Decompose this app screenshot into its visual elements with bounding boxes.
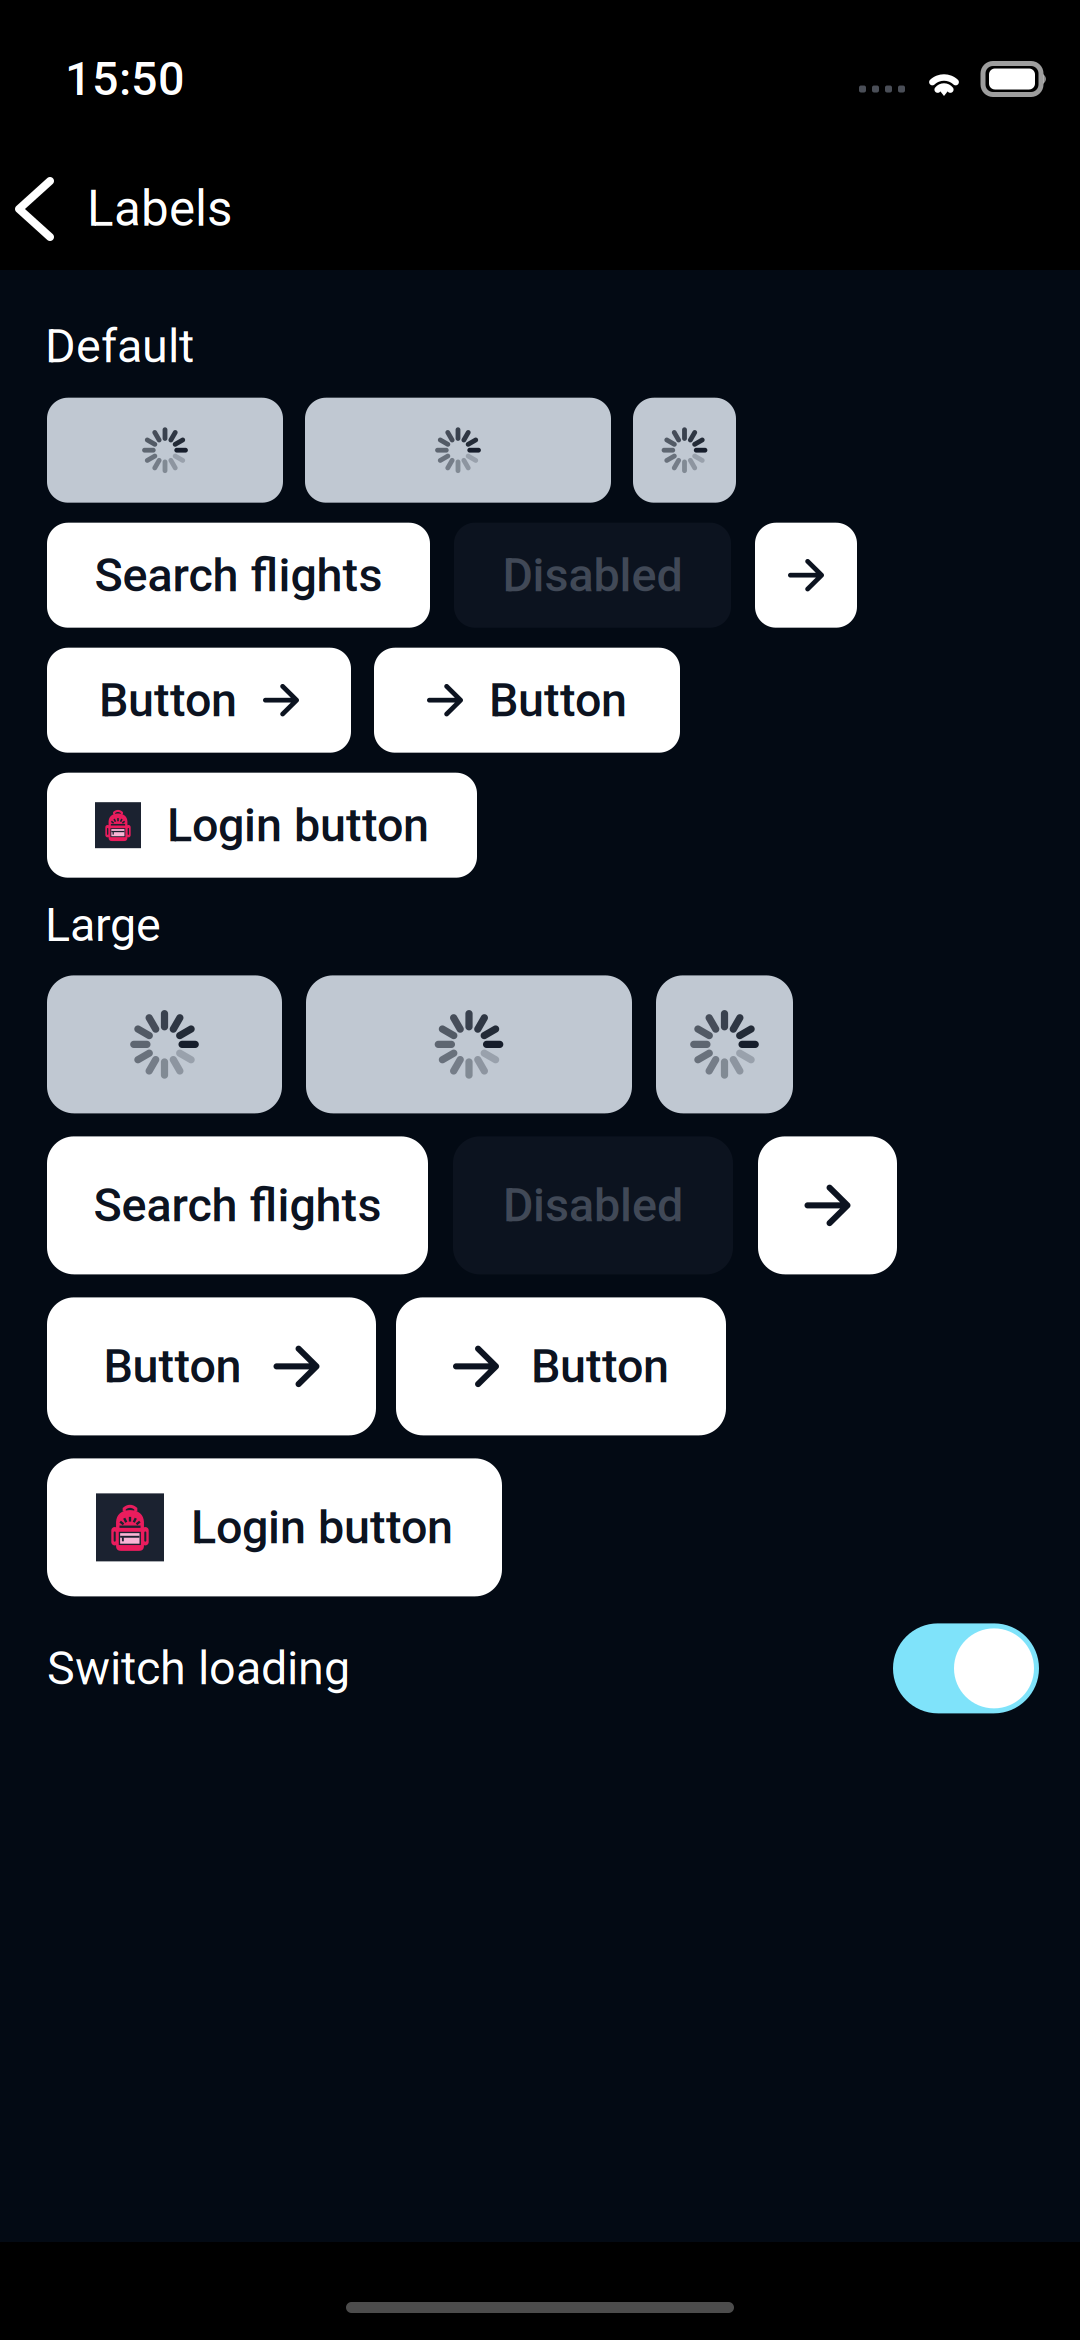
staticText: 15:50 (65, 52, 185, 106)
button[interactable] (47, 1458, 502, 1596)
staticText: Switch loading (47, 1641, 350, 1696)
button[interactable] (47, 773, 477, 878)
button[interactable] (454, 523, 731, 628)
staticText: Search flights (93, 1178, 381, 1233)
staticText: Button (531, 1339, 669, 1394)
staticText: Default (45, 319, 194, 374)
button[interactable]: Loading (633, 398, 736, 503)
staticText: Labels (87, 180, 232, 238)
button[interactable]: Loading (47, 398, 283, 503)
button[interactable] (47, 1297, 376, 1435)
staticText: Disabled (503, 1178, 683, 1233)
button[interactable] (396, 1297, 726, 1435)
button[interactable] (374, 648, 680, 753)
staticText: Disabled (502, 548, 682, 602)
staticText: Button (103, 1339, 241, 1394)
staticText: Large (45, 898, 161, 952)
button[interactable] (47, 648, 351, 753)
button[interactable]: Loading (306, 975, 632, 1113)
button[interactable] (47, 1136, 428, 1274)
button[interactable] (47, 523, 430, 628)
button[interactable]: Switch loading (893, 1623, 1039, 1713)
button[interactable]: Continue (755, 523, 857, 628)
staticText: Login button (191, 1500, 453, 1555)
button[interactable]: Loading (305, 398, 611, 503)
staticText: Search flights (94, 548, 382, 602)
staticText: Button (489, 673, 627, 727)
button[interactable]: Loading (656, 975, 793, 1113)
button[interactable]: Labels (0, 157, 252, 261)
staticText: Login button (167, 798, 429, 852)
button[interactable] (453, 1136, 733, 1274)
staticText: Button (99, 673, 237, 727)
button[interactable]: Loading (47, 975, 282, 1113)
button[interactable]: Continue (758, 1136, 897, 1274)
